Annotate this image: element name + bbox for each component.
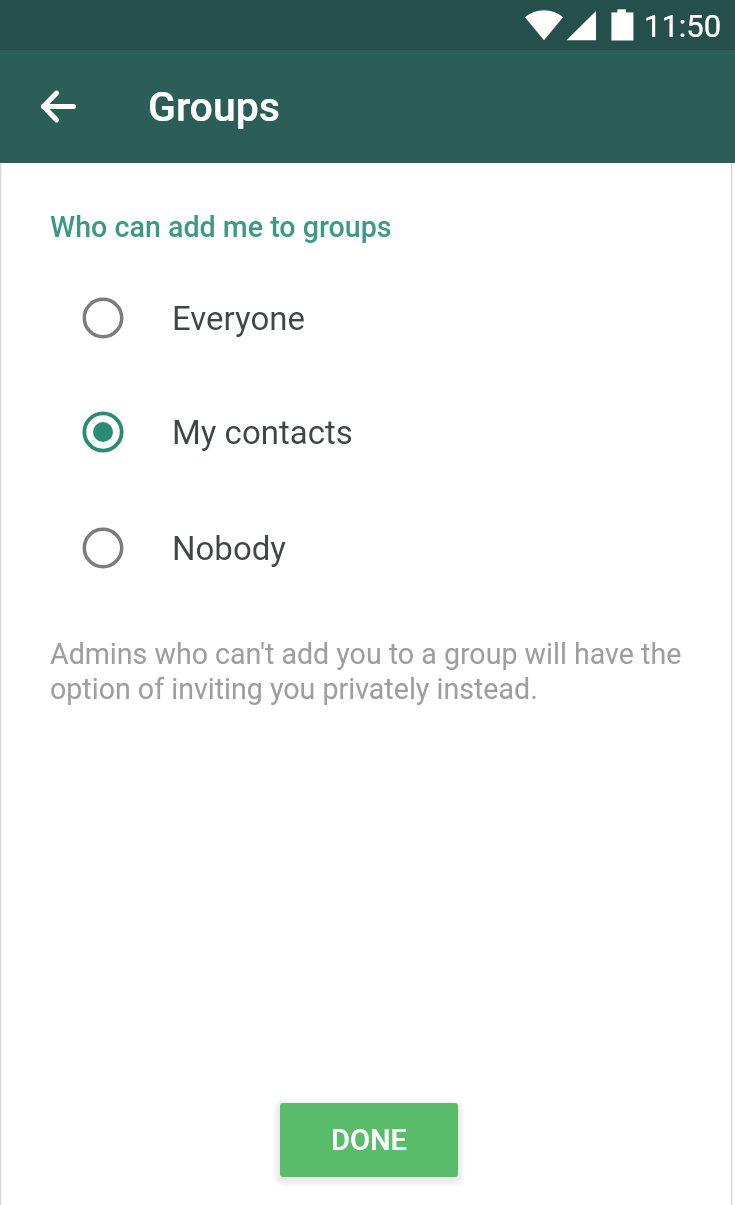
staticText: Nobody bbox=[172, 529, 286, 568]
staticText: Admins who can't add you to a group will… bbox=[50, 636, 695, 706]
staticText: 11:50 bbox=[644, 8, 722, 44]
button[interactable]: Nobody bbox=[0, 491, 735, 605]
staticText: DONE bbox=[331, 1123, 407, 1157]
staticText: Everyone bbox=[172, 299, 305, 338]
staticText: My contacts bbox=[172, 413, 353, 452]
button[interactable]: Back bbox=[24, 73, 92, 141]
staticText: Who can add me to groups bbox=[50, 210, 392, 244]
button[interactable]: DONE bbox=[280, 1103, 458, 1177]
staticText: Groups bbox=[148, 83, 281, 131]
button[interactable]: Everyone bbox=[0, 261, 735, 375]
button[interactable]: My contacts bbox=[0, 375, 735, 489]
